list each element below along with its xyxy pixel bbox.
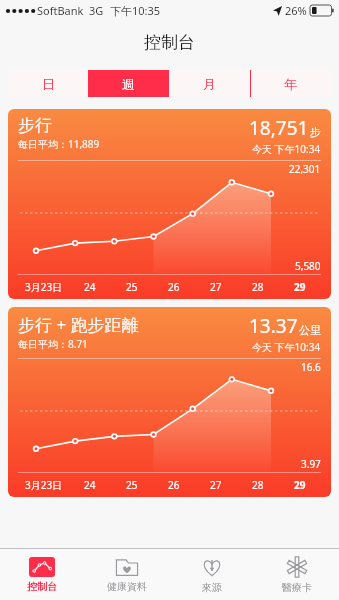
staticText: 27	[210, 280, 222, 294]
staticText: 22,301	[289, 162, 321, 176]
staticText: SoftBank	[37, 3, 84, 18]
staticText: 醫療卡	[282, 581, 312, 594]
staticText: 5,580	[295, 259, 321, 273]
staticText: 3G	[89, 3, 104, 18]
staticText: 18,751	[249, 115, 309, 141]
staticText: 26	[168, 280, 180, 294]
staticText: 3月23日	[25, 478, 63, 492]
staticText: 16.6	[301, 360, 321, 374]
staticText: 28	[252, 478, 264, 492]
staticText: 27	[210, 478, 222, 492]
staticText: 來源	[202, 581, 222, 594]
staticText: 步行	[18, 115, 52, 136]
staticText: 月	[203, 76, 216, 92]
staticText: 3月23日	[25, 280, 63, 294]
button[interactable]: 年	[250, 70, 331, 97]
staticText: 下午10:35	[110, 3, 161, 18]
button[interactable]: 週	[88, 70, 169, 97]
button[interactable]: 月	[169, 70, 250, 97]
staticText: 13.37	[249, 313, 298, 339]
staticText: 控制台	[27, 580, 57, 593]
staticText: 25	[126, 478, 138, 492]
button[interactable]: 來源	[169, 549, 254, 600]
staticText: 3.97	[301, 457, 321, 471]
staticText: 健康資料	[107, 580, 147, 593]
staticText: 步	[310, 125, 321, 139]
button[interactable]: 健康資料	[84, 549, 169, 600]
staticText: 日	[42, 76, 55, 92]
staticText: 每日平均：8.71	[18, 337, 88, 351]
staticText: 29	[294, 280, 306, 294]
staticText: 28	[252, 280, 264, 294]
staticText: 26	[168, 478, 180, 492]
button[interactable]: 日	[8, 70, 88, 97]
staticText: 公里	[299, 323, 321, 337]
button[interactable]: 步行 + 跑步距離	[8, 307, 331, 497]
staticText: 今天 下午10:34	[252, 340, 321, 354]
staticText: 年	[284, 76, 297, 92]
staticText: 25	[126, 280, 138, 294]
staticText: 29	[294, 478, 306, 492]
staticText: 步行 + 跑步距離	[18, 313, 139, 336]
staticText: 控制台	[144, 32, 195, 53]
staticText: 今天 下午10:34	[252, 142, 321, 156]
staticText: 24	[84, 478, 96, 492]
staticText: 24	[84, 280, 96, 294]
button[interactable]: 控制台	[0, 549, 84, 600]
staticText: 每日平均：11,889	[18, 137, 100, 151]
button[interactable]: 醫療卡	[254, 549, 339, 600]
staticText: 週	[122, 76, 135, 92]
button[interactable]: 步行	[8, 109, 331, 299]
staticText: 26%	[285, 3, 307, 18]
